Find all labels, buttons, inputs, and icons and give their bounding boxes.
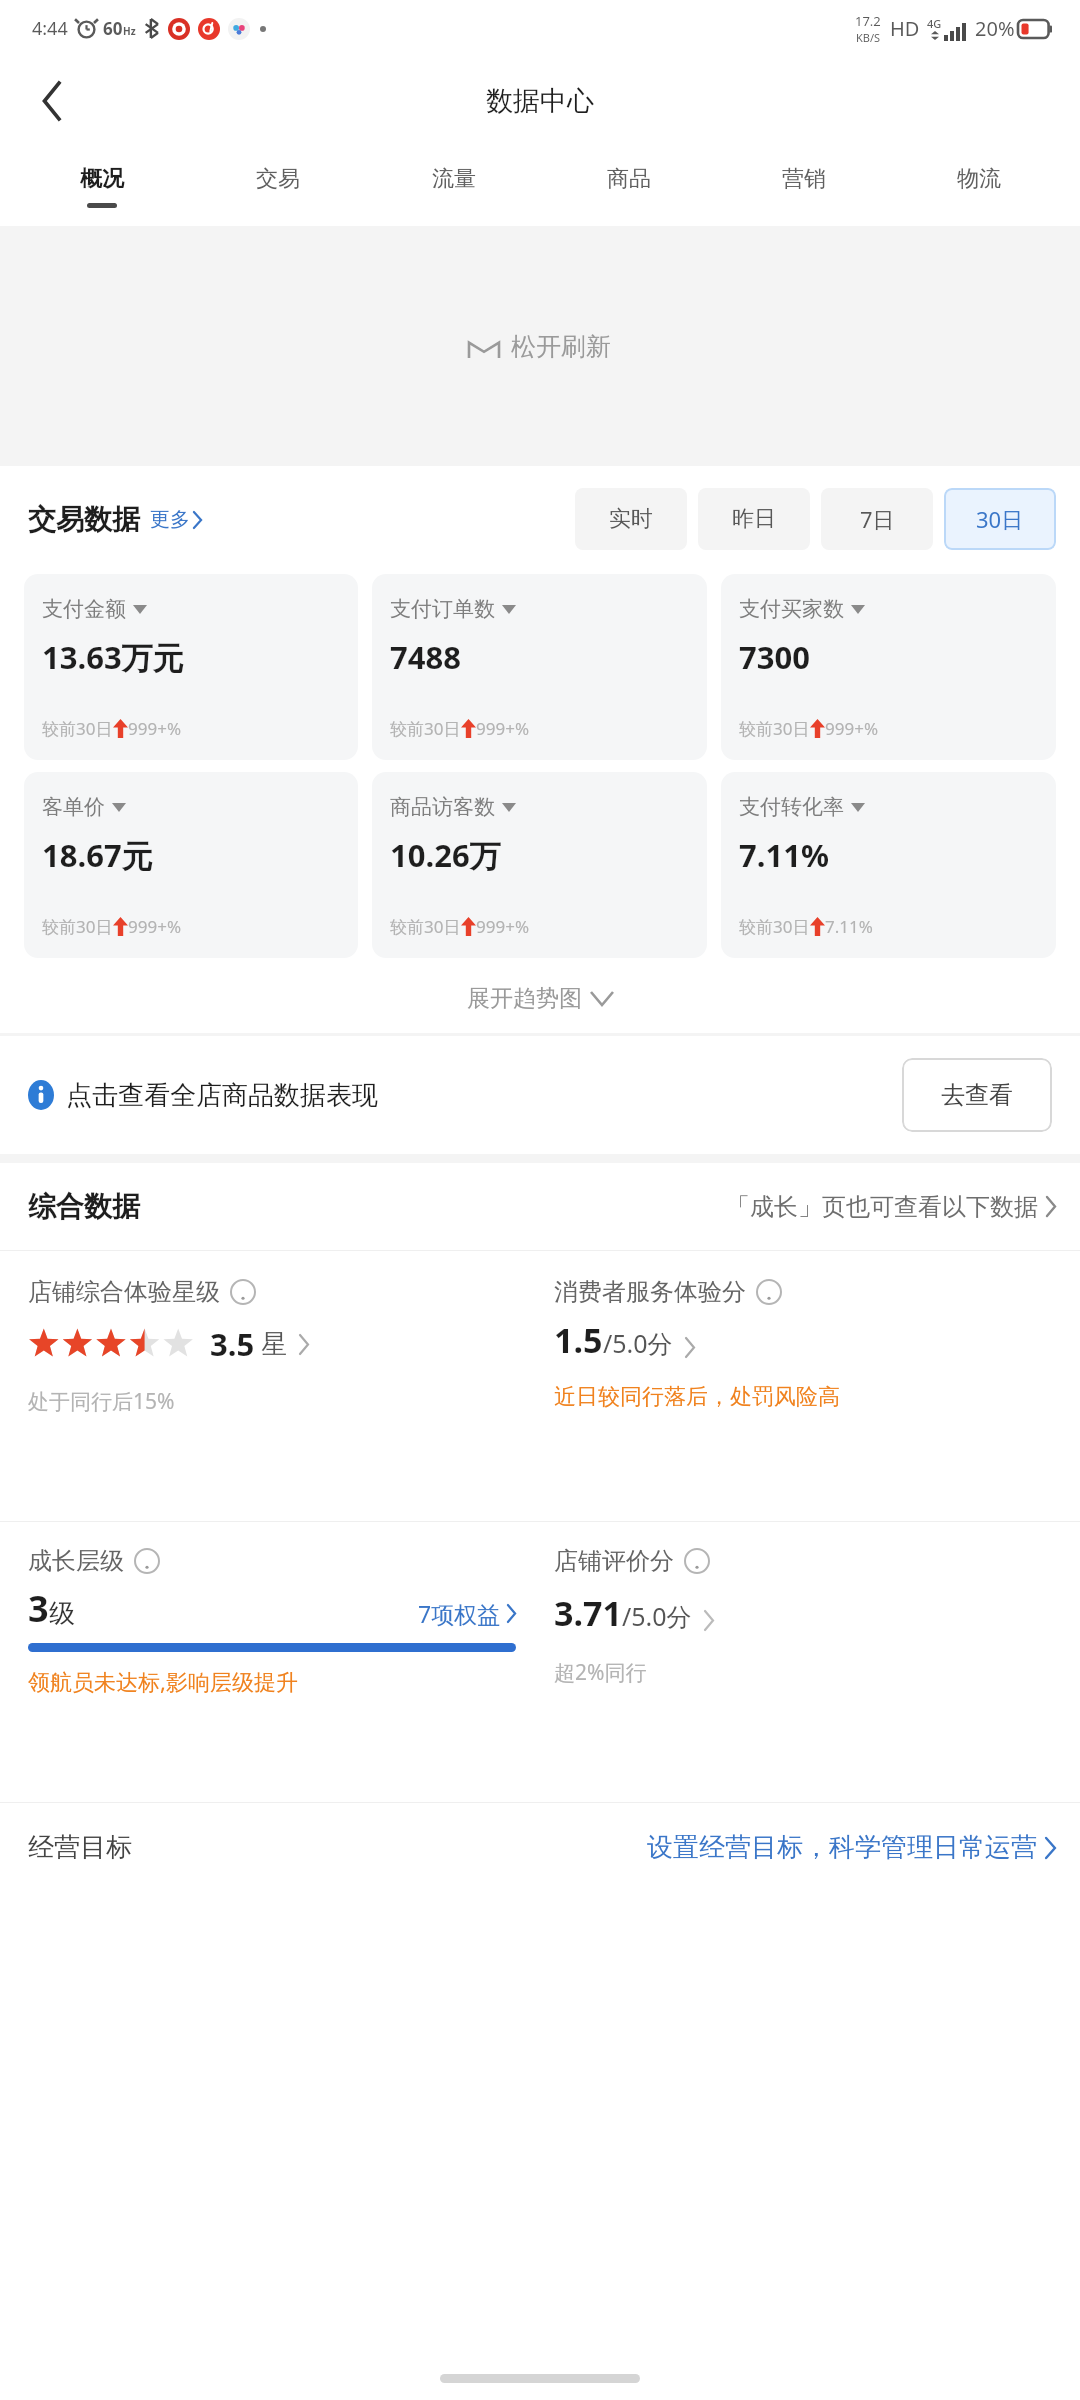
staticText: 7.11% bbox=[825, 915, 873, 938]
button[interactable]: 经营目标 bbox=[28, 1831, 1056, 1864]
staticText: 商品访客数 bbox=[390, 794, 495, 820]
button[interactable]: 7项权益 bbox=[418, 1598, 516, 1629]
staticText: 较前30日 bbox=[42, 717, 113, 740]
button[interactable]: 店铺评价分 bbox=[554, 1546, 1080, 1687]
button[interactable]: 30日 bbox=[944, 488, 1056, 550]
staticText: 支付订单数 bbox=[390, 596, 495, 622]
button[interactable]: 成长层级 bbox=[28, 1546, 516, 1696]
staticText: 4:44 bbox=[32, 16, 68, 41]
staticText: 交易 bbox=[256, 165, 300, 193]
staticText: 4G bbox=[927, 16, 942, 31]
button[interactable]: 综合数据 bbox=[28, 1189, 1056, 1224]
staticText: 10.26万 bbox=[390, 834, 501, 876]
staticText: 较前30日 bbox=[390, 915, 461, 938]
staticText: 概况 bbox=[80, 165, 124, 193]
staticText: 7300 bbox=[739, 636, 810, 678]
staticText: 30日 bbox=[976, 504, 1024, 534]
staticText: 昨日 bbox=[732, 505, 776, 533]
staticText: 实时 bbox=[609, 505, 653, 533]
button[interactable]: 店铺综合体验星级 bbox=[28, 1277, 540, 1416]
staticText: 7.11% bbox=[739, 834, 829, 876]
staticText: 客单价 bbox=[42, 794, 105, 820]
staticText: 3.71 bbox=[554, 1590, 622, 1636]
other: Help bbox=[684, 1548, 710, 1574]
staticText: 较前30日 bbox=[739, 915, 810, 938]
button[interactable]: Back bbox=[22, 71, 82, 131]
staticText: 成长层级 bbox=[28, 1546, 124, 1576]
staticText: 消费者服务体验分 bbox=[554, 1277, 746, 1307]
button[interactable]: 昨日 bbox=[698, 488, 810, 550]
staticText: 7488 bbox=[390, 636, 461, 678]
other: Help bbox=[230, 1279, 256, 1305]
staticText: 展开趋势图 bbox=[467, 984, 582, 1013]
staticText: 999+% bbox=[128, 717, 182, 740]
staticText: 999+% bbox=[476, 915, 530, 938]
button[interactable]: 流量 bbox=[366, 146, 541, 226]
button[interactable]: 客单价 bbox=[24, 772, 358, 958]
staticText: 7日 bbox=[860, 504, 895, 534]
staticText: 支付转化率 bbox=[739, 794, 844, 820]
staticText: 「成长」页也可查看以下数据 bbox=[726, 1192, 1038, 1222]
staticText: 999+% bbox=[128, 915, 182, 938]
button[interactable]: 点击查看全店商品数据表现 bbox=[28, 1058, 1052, 1132]
staticText: 店铺评价分 bbox=[554, 1546, 674, 1576]
staticText: 设置经营目标，科学管理日常运营 bbox=[647, 1831, 1037, 1864]
staticText: 领航员未达标,影响层级提升 bbox=[28, 1666, 298, 1696]
button[interactable]: 支付订单数 bbox=[372, 574, 707, 760]
staticText: 星 bbox=[261, 1328, 287, 1361]
staticText: 处于同行后15% bbox=[28, 1387, 175, 1416]
staticText: 超2%同行 bbox=[554, 1658, 647, 1687]
staticText: 级 bbox=[49, 1597, 75, 1630]
button[interactable]: 交易 bbox=[190, 146, 366, 226]
staticText: 18.67元 bbox=[42, 834, 153, 876]
staticText: 经营目标 bbox=[28, 1831, 132, 1864]
staticText: /5.0分 bbox=[622, 1599, 692, 1633]
button[interactable]: 实时 bbox=[575, 488, 687, 550]
staticText: 点击查看全店商品数据表现 bbox=[66, 1079, 378, 1112]
staticText: HD bbox=[890, 15, 920, 42]
staticText: 支付买家数 bbox=[739, 596, 844, 622]
other: Help bbox=[756, 1279, 782, 1305]
staticText: 60 bbox=[103, 17, 123, 40]
staticText: 支付金额 bbox=[42, 596, 126, 622]
button[interactable]: 概况 bbox=[14, 146, 190, 226]
button[interactable]: 支付转化率 bbox=[721, 772, 1056, 958]
staticText: Hz bbox=[123, 24, 136, 38]
staticText: 999+% bbox=[476, 717, 530, 740]
staticText: 较前30日 bbox=[390, 717, 461, 740]
staticText: 13.63万元 bbox=[42, 636, 184, 678]
staticText: 17.2 bbox=[855, 12, 881, 30]
staticText: 更多 bbox=[150, 507, 190, 532]
button[interactable]: 商品访客数 bbox=[372, 772, 707, 958]
button[interactable]: 营销 bbox=[716, 146, 891, 226]
button[interactable]: 展开趋势图 bbox=[467, 984, 613, 1013]
button[interactable]: 去查看 bbox=[902, 1058, 1052, 1132]
staticText: 7项权益 bbox=[418, 1598, 501, 1629]
button[interactable]: 支付金额 bbox=[24, 574, 358, 760]
staticText: 1.5 bbox=[554, 1317, 603, 1363]
staticText: 去查看 bbox=[941, 1080, 1013, 1110]
staticText: 999+% bbox=[825, 717, 879, 740]
other: Help bbox=[134, 1548, 160, 1574]
staticText: 物流 bbox=[957, 165, 1001, 193]
staticText: 商品 bbox=[607, 165, 651, 193]
staticText: /5.0分 bbox=[603, 1326, 673, 1360]
staticText: 流量 bbox=[432, 165, 476, 193]
staticText: 较前30日 bbox=[739, 717, 810, 740]
staticText: 交易数据 bbox=[28, 502, 140, 537]
staticText: 3.5 bbox=[210, 1323, 255, 1365]
button[interactable]: 物流 bbox=[891, 146, 1066, 226]
staticText: KB/S bbox=[856, 30, 881, 45]
staticText: 数据中心 bbox=[486, 84, 594, 118]
staticText: 综合数据 bbox=[28, 1189, 140, 1224]
button[interactable]: 消费者服务体验分 bbox=[554, 1277, 1080, 1411]
staticText: 近日较同行落后，处罚风险高 bbox=[554, 1383, 840, 1411]
staticText: 松开刷新 bbox=[511, 331, 611, 362]
button[interactable]: 7日 bbox=[821, 488, 933, 550]
staticText: 店铺综合体验星级 bbox=[28, 1277, 220, 1307]
button[interactable]: 支付买家数 bbox=[721, 574, 1056, 760]
button[interactable]: 更多 bbox=[150, 507, 202, 532]
staticText: 较前30日 bbox=[42, 915, 113, 938]
staticText: 3 bbox=[28, 1584, 49, 1633]
button[interactable]: 商品 bbox=[541, 146, 716, 226]
